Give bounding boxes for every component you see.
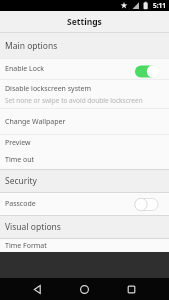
button[interactable] (14, 278, 61, 300)
button[interactable]: Enable Lock (0, 59, 169, 79)
button[interactable]: Time out (0, 151, 169, 169)
staticText: Set none or swipe to avoid double locksc… (5, 96, 143, 105)
staticText: Disable lockscreen system (5, 84, 92, 94)
staticText: Change Wallpaper (5, 117, 66, 127)
button[interactable]: Passcode (0, 193, 169, 215)
staticText: Security (5, 175, 37, 187)
staticText: Passcode (5, 199, 36, 209)
staticText: Settings (67, 16, 102, 28)
staticText: Enable Lock (5, 64, 45, 74)
button[interactable]: Change Wallpaper (0, 109, 169, 134)
staticText: 5:11 (153, 1, 166, 10)
button[interactable]: Time Format (0, 239, 169, 252)
button[interactable] (61, 278, 108, 300)
staticText: Preview (5, 138, 31, 148)
staticText: Time out (5, 155, 35, 165)
button[interactable]: Disable lockscreen system (0, 80, 169, 108)
staticText: Main options (5, 40, 58, 52)
staticText: Time Format (5, 241, 47, 251)
button[interactable] (108, 278, 155, 300)
staticText: Visual options (5, 221, 61, 233)
button[interactable]: Preview (0, 135, 169, 151)
